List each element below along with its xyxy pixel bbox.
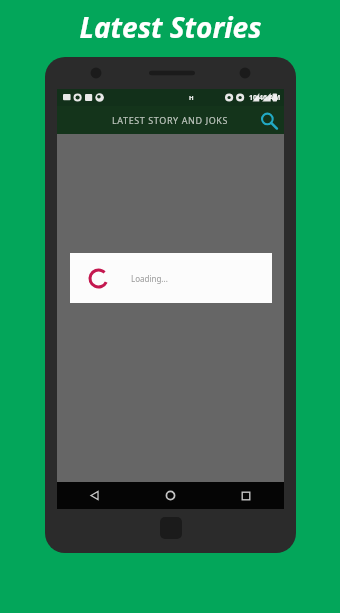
button[interactable]: Back bbox=[57, 482, 132, 509]
staticText: H bbox=[189, 94, 194, 102]
staticText: Latest Stories bbox=[79, 8, 262, 46]
button[interactable]: LATEST STORY AND JOKS bbox=[57, 106, 284, 134]
button[interactable]: Recent apps bbox=[208, 482, 284, 509]
button[interactable]: Search bbox=[259, 111, 278, 130]
staticText: 10:46 AM bbox=[249, 93, 281, 103]
staticText: Loading... bbox=[131, 273, 168, 284]
button[interactable]: Home bbox=[132, 482, 208, 509]
staticText: LATEST STORY AND JOKS bbox=[112, 114, 229, 126]
